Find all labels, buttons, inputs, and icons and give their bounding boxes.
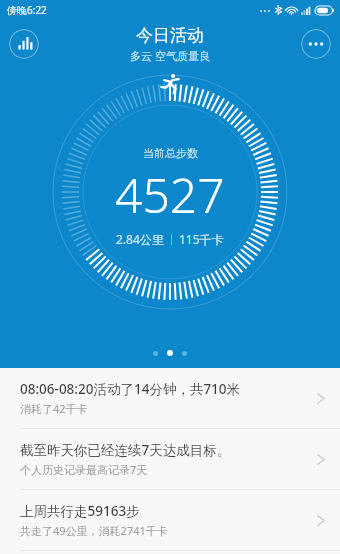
staticText: 2.84公里 [116,231,164,247]
staticText: 傍晚6:22 [7,3,47,17]
button[interactable]: 08:06-08:20活动了14分钟，共710米 [0,368,340,428]
button[interactable]: 截至昨天你已经连续7天达成目标。 [0,429,340,489]
staticText: 多云 空气质量良 [130,48,210,63]
staticText: 个人历史记录最高记录7天 [20,462,148,477]
staticText: 今日活动 [136,25,204,46]
staticText: 4527 [115,162,225,227]
staticText: 当前总步数 [143,146,198,160]
staticText: 115千卡 [179,231,224,247]
button[interactable]: More options [301,29,331,59]
staticText: 截至昨天你已经连续7天达成目标。 [20,441,231,459]
staticText: 共走了49公里，消耗2741千卡 [20,523,168,538]
staticText: 上周共行走59163步 [20,502,140,520]
staticText: 消耗了42千卡 [20,401,88,416]
staticText: 08:06-08:20活动了14分钟，共710米 [20,380,241,398]
button[interactable]: Statistics [9,29,39,59]
button[interactable]: 上周共行走59163步 [0,490,340,550]
